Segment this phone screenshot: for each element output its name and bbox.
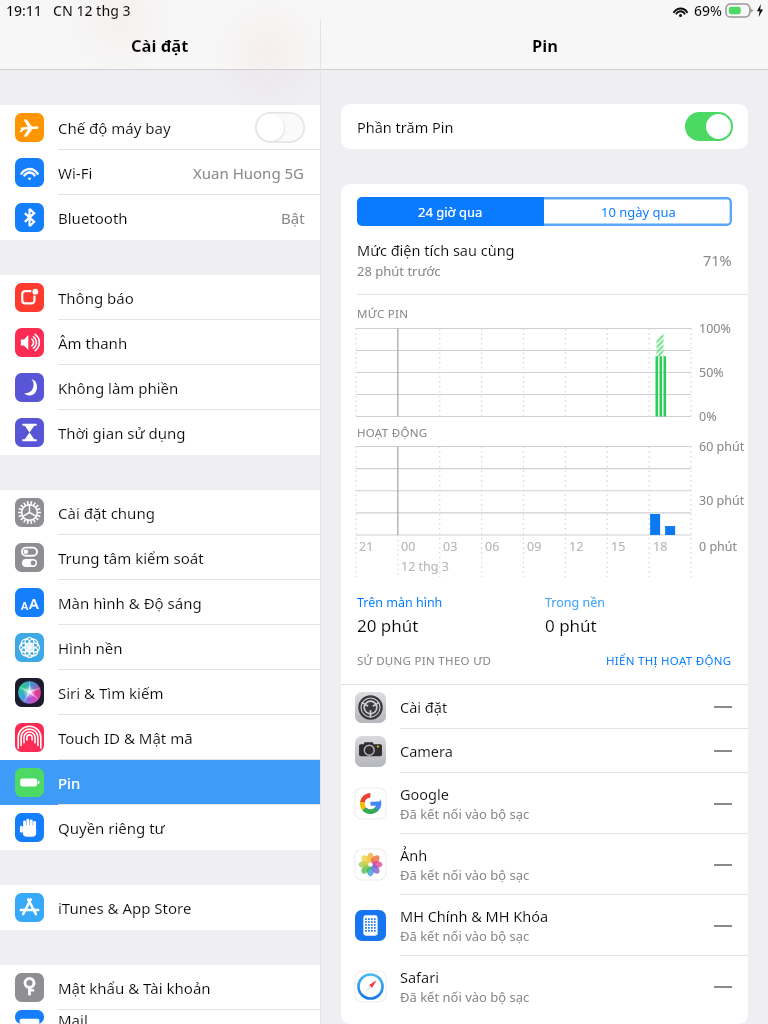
button[interactable]: Google bbox=[341, 773, 748, 834]
staticText: Quyền riêng tư bbox=[58, 818, 165, 838]
staticText: Cài đặt bbox=[400, 697, 448, 717]
button[interactable]: Trung tâm kiểm soát bbox=[0, 535, 320, 580]
staticText: Phần trăm Pin bbox=[357, 117, 454, 137]
staticText: Màn hình & Độ sáng bbox=[58, 593, 202, 613]
button[interactable]: Battery percentage toggle bbox=[685, 112, 733, 141]
staticText: 19:11 bbox=[6, 1, 42, 20]
staticText: SỬ DỤNG PIN THEO ƯD bbox=[357, 653, 492, 669]
staticText: 21 bbox=[359, 538, 374, 555]
button[interactable]: Quyền riêng tư bbox=[0, 805, 320, 850]
staticText: 18 bbox=[653, 538, 668, 555]
staticText: Đã kết nối vào bộ sạc bbox=[400, 805, 530, 823]
staticText: 00 bbox=[401, 538, 416, 555]
button[interactable]: Wi-Fi bbox=[0, 150, 320, 195]
staticText: Wi-Fi bbox=[58, 163, 93, 183]
staticText: iTunes & App Store bbox=[58, 898, 192, 918]
staticText: 15 bbox=[611, 538, 626, 555]
staticText: A bbox=[21, 598, 29, 613]
staticText: 100% bbox=[699, 320, 731, 337]
staticText: Chế độ máy bay bbox=[58, 118, 171, 138]
button[interactable]: Thời gian sử dụng bbox=[0, 410, 320, 455]
button[interactable]: 24 giờ qua bbox=[357, 197, 544, 226]
button[interactable]: 10 ngày qua bbox=[544, 197, 732, 226]
staticText: 0 phút bbox=[699, 538, 738, 555]
staticText: 28 phút trước bbox=[357, 262, 441, 280]
staticText: 03 bbox=[443, 538, 458, 555]
staticText: Trong nền bbox=[545, 594, 605, 611]
staticText: Xuan Huong 5G bbox=[193, 163, 305, 183]
staticText: Bluetooth bbox=[58, 208, 128, 228]
button[interactable]: Siri & Tìm kiếm bbox=[0, 670, 320, 715]
button[interactable]: Cài đặt chung bbox=[0, 490, 320, 535]
staticText: 71% bbox=[703, 250, 732, 270]
staticText: 30 phút bbox=[699, 492, 745, 509]
staticText: Cài đặt chung bbox=[58, 503, 155, 523]
staticText: 24 giờ qua bbox=[418, 203, 483, 221]
staticText: Touch ID & Mật mã bbox=[58, 728, 193, 748]
staticText: Bật bbox=[281, 208, 305, 228]
button[interactable]: Cài đặt bbox=[341, 685, 748, 729]
button[interactable]: Âm thanh bbox=[0, 320, 320, 365]
button[interactable]: Bluetooth bbox=[0, 195, 320, 240]
staticText: 12 bbox=[569, 538, 584, 555]
button[interactable]: A bbox=[0, 580, 320, 625]
staticText: 20 phút bbox=[357, 614, 419, 637]
staticText: 09 bbox=[527, 538, 542, 555]
staticText: Trên màn hình bbox=[357, 594, 443, 611]
staticText: Pin bbox=[58, 773, 81, 793]
staticText: 60 phút bbox=[699, 438, 745, 455]
staticText: Trung tâm kiểm soát bbox=[58, 548, 204, 568]
button[interactable]: Camera bbox=[341, 729, 748, 773]
staticText: 0 phút bbox=[545, 614, 597, 637]
button[interactable]: MH Chính & MH Khóa bbox=[341, 895, 748, 956]
staticText: Siri & Tìm kiếm bbox=[58, 683, 164, 703]
button[interactable]: Hình nền bbox=[0, 625, 320, 670]
staticText: Đã kết nối vào bộ sạc bbox=[400, 866, 530, 884]
staticText: Thông báo bbox=[58, 288, 134, 308]
staticText: 12 thg 3 bbox=[401, 558, 449, 575]
button[interactable]: Airplane mode toggle bbox=[255, 112, 305, 143]
staticText: Safari bbox=[400, 967, 439, 987]
button[interactable]: Chế độ máy bay bbox=[0, 105, 320, 150]
staticText: Mật khẩu & Tài khoản bbox=[58, 978, 211, 998]
button[interactable]: Phần trăm Pin bbox=[341, 104, 748, 149]
button[interactable]: Mail bbox=[0, 1010, 320, 1024]
staticText: MỨC PIN bbox=[357, 306, 409, 322]
staticText: MH Chính & MH Khóa bbox=[400, 906, 549, 926]
button[interactable]: Mật khẩu & Tài khoản bbox=[0, 965, 320, 1010]
button[interactable]: Pin bbox=[0, 760, 320, 805]
staticText: Ảnh bbox=[400, 845, 428, 865]
staticText: 50% bbox=[699, 364, 724, 381]
staticText: Không làm phiền bbox=[58, 378, 179, 398]
button[interactable]: Thông báo bbox=[0, 275, 320, 320]
staticText: Hình nền bbox=[58, 638, 123, 658]
button[interactable]: Ảnh bbox=[341, 834, 748, 895]
staticText: Âm thanh bbox=[58, 333, 128, 353]
staticText: Pin bbox=[532, 34, 558, 56]
staticText: HOẠT ĐỘNG bbox=[357, 425, 428, 441]
staticText: Đã kết nối vào bộ sạc bbox=[400, 927, 530, 945]
staticText: Thời gian sử dụng bbox=[58, 423, 186, 443]
staticText: Mức điện tích sau cùng bbox=[357, 240, 515, 260]
button[interactable]: Safari bbox=[341, 956, 748, 1017]
staticText: CN 12 thg 3 bbox=[53, 1, 131, 20]
staticText: Camera bbox=[400, 741, 453, 761]
staticText: Google bbox=[400, 784, 449, 804]
button[interactable]: Không làm phiền bbox=[0, 365, 320, 410]
staticText: A bbox=[29, 593, 39, 613]
staticText: Mail bbox=[58, 1010, 88, 1024]
staticText: Cài đặt bbox=[131, 34, 189, 56]
button[interactable]: HIỂN THỊ HOẠT ĐỘNG bbox=[606, 653, 732, 669]
staticText: Đã kết nối vào bộ sạc bbox=[400, 988, 530, 1006]
button[interactable]: Touch ID & Mật mã bbox=[0, 715, 320, 760]
button[interactable]: iTunes & App Store bbox=[0, 885, 320, 930]
staticText: 10 ngày qua bbox=[601, 203, 676, 221]
staticText: 0% bbox=[699, 408, 717, 425]
staticText: 06 bbox=[485, 538, 500, 555]
staticText: 69% bbox=[694, 1, 722, 20]
